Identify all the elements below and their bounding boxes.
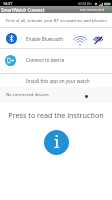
staticText: Connect to device bbox=[26, 57, 65, 63]
staticText: First of all, activate your BT on watche… bbox=[6, 18, 107, 24]
button[interactable]: Enable Bluetooth bbox=[6, 33, 17, 44]
staticText: not connected bbox=[80, 7, 105, 12]
staticText: Enable Bluetooth bbox=[26, 36, 64, 42]
staticText: i bbox=[54, 130, 60, 153]
staticText: No connected devices bbox=[6, 92, 49, 98]
button[interactable]: Read the instruction bbox=[44, 130, 69, 155]
staticText: 14:37 bbox=[3, 1, 13, 6]
staticText: Install this app on your watch bbox=[26, 78, 90, 84]
button[interactable]: Connect to device bbox=[5, 55, 16, 66]
button[interactable]: Install this app on your watch bbox=[26, 78, 90, 84]
staticText: Press to read the instruction bbox=[0, 110, 112, 120]
staticText: SmartWatch Connect bbox=[1, 7, 45, 13]
staticText: 43.94 K/s bbox=[78, 2, 92, 6]
